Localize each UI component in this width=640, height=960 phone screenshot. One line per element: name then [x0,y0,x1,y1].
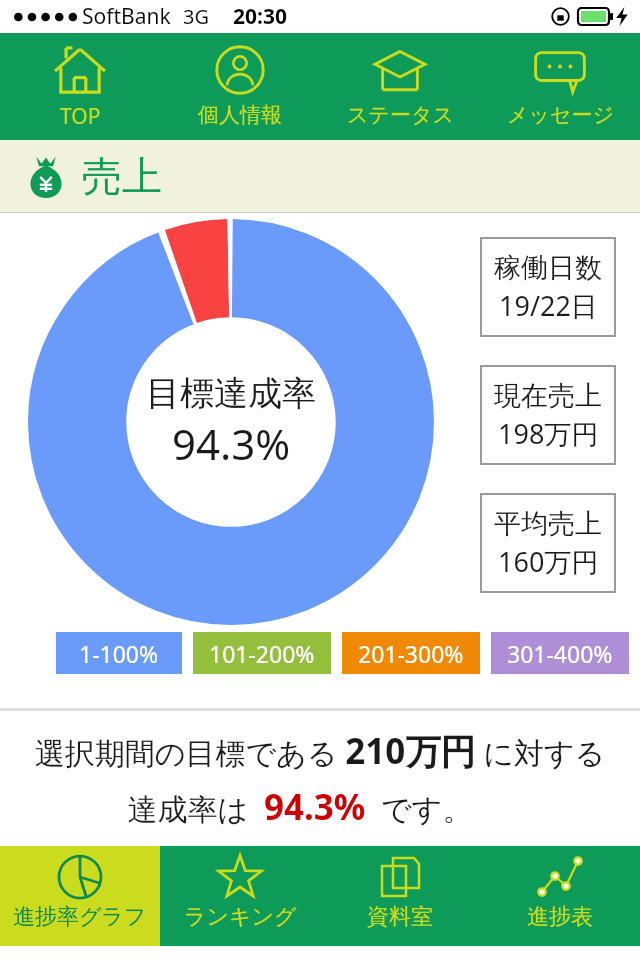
staticText: 資料室 [367,903,433,931]
staticText: 稼働日数 [494,251,602,285]
staticText: 101-200% [209,638,315,669]
staticText: 94.3% [172,415,291,472]
staticText: 301-400% [507,638,613,669]
staticText: 進捗率グラフ [13,903,147,931]
staticText: ステータス [347,102,454,128]
staticText: 達成率は 94.3% です。 [0,783,600,831]
staticText: 201-300% [358,638,464,669]
staticText: TOP [60,102,101,131]
staticText: 個人情報 [198,102,282,128]
staticText: 3G [183,3,209,30]
staticText: 売上 [82,151,162,201]
button[interactable]: 現在売上 [480,365,616,465]
staticText: メッセージ [507,102,614,128]
button[interactable]: 301-400% [491,632,629,674]
button[interactable]: メッセージ [480,33,640,138]
button[interactable]: 進捗率グラフ [0,846,160,946]
staticText: 進捗表 [527,903,593,931]
staticText: 選択期間の目標である 210万円 に対する [0,727,640,775]
staticText: 平均売上 [494,507,602,541]
staticText: 198万円 [498,415,599,452]
staticText: 20:30 [233,2,287,31]
button[interactable]: ランキング [160,846,320,946]
button[interactable]: 平均売上 [480,493,616,593]
button[interactable]: 101-200% [193,632,331,674]
button[interactable]: 資料室 [320,846,480,946]
staticText: 160万円 [498,543,599,580]
staticText: 目標達成率 [146,372,316,415]
staticText: 19/22日 [499,287,598,324]
button[interactable]: 個人情報 [160,33,320,138]
staticText: SoftBank [82,2,171,31]
staticText: ランキング [184,903,297,931]
button[interactable]: TOP [0,33,160,138]
button[interactable]: 1-100% [56,632,182,674]
staticText: 1-100% [79,638,159,669]
button[interactable]: ステータス [320,33,480,138]
staticText: 現在売上 [494,379,602,413]
button[interactable]: 201-300% [342,632,480,674]
button[interactable]: 進捗表 [480,846,640,946]
button[interactable]: 稼働日数 [480,237,616,337]
